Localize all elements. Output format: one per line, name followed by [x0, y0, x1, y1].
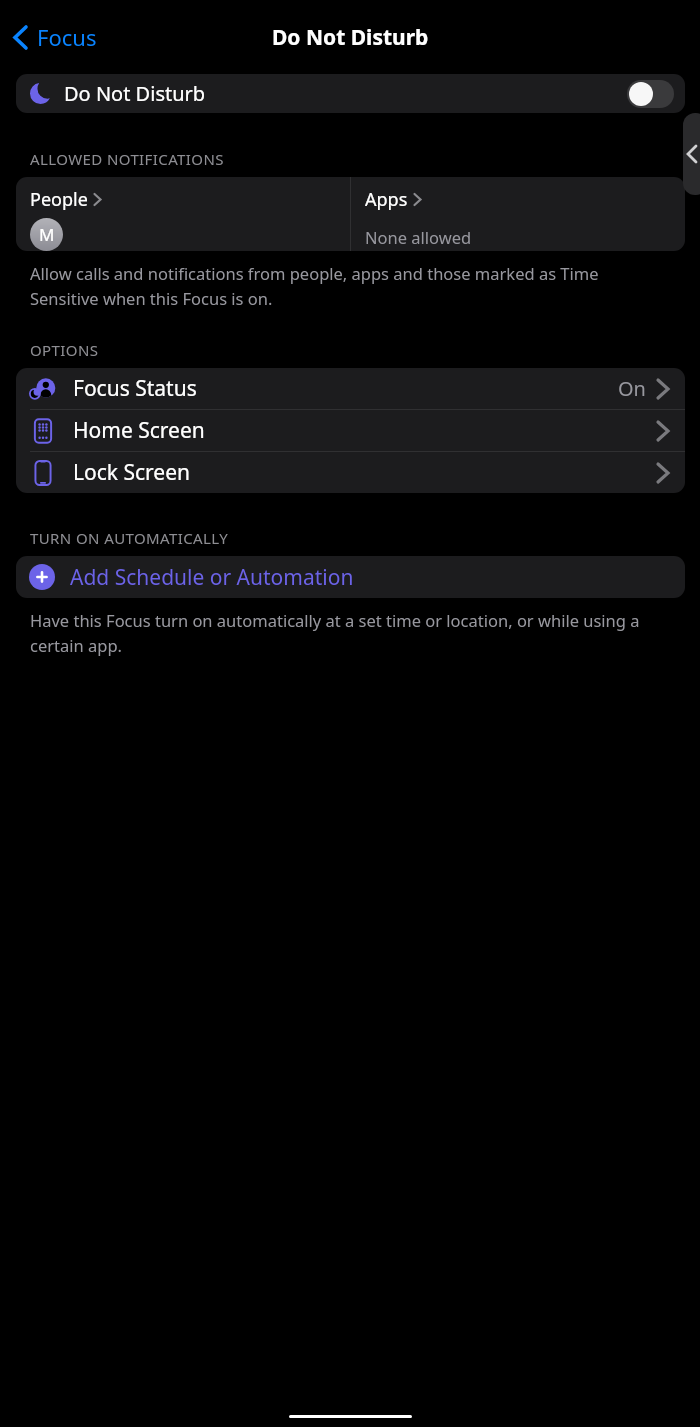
button[interactable]: Lock Screen [16, 452, 685, 493]
staticText: Focus Status [73, 374, 618, 403]
button[interactable]: Focus [4, 17, 107, 57]
button[interactable]: Back [683, 113, 700, 195]
staticText: TURN ON AUTOMATICALLY [30, 528, 229, 548]
staticText: None allowed [365, 226, 472, 248]
button[interactable]: Add Schedule or Automation [16, 556, 685, 598]
staticText: ALLOWED NOTIFICATIONS [30, 149, 224, 169]
staticText: Focus [37, 22, 97, 52]
staticText: OPTIONS [30, 340, 99, 360]
button[interactable]: Do Not Disturb toggle [627, 80, 674, 108]
button[interactable]: Apps [351, 177, 685, 251]
staticText: Do Not Disturb [272, 23, 429, 52]
button[interactable]: Do Not Disturb [16, 74, 685, 113]
staticText: Do Not Disturb [64, 80, 627, 107]
staticText: Allow calls and notifications from peopl… [30, 262, 670, 309]
button[interactable]: Home Screen [16, 410, 685, 451]
staticText: On [618, 375, 646, 402]
button[interactable]: People [16, 177, 350, 251]
staticText: Lock Screen [73, 458, 655, 487]
staticText: M [39, 223, 55, 246]
button[interactable]: Focus Status [16, 368, 685, 409]
staticText: Add Schedule or Automation [70, 563, 354, 592]
staticText: Have this Focus turn on automatically at… [30, 609, 670, 656]
staticText: Apps [365, 187, 408, 212]
staticText: Home Screen [73, 416, 655, 445]
staticText: People [30, 187, 88, 212]
